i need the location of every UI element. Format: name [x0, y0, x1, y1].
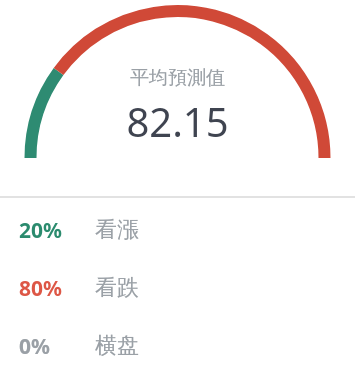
staticText: 82.15	[126, 94, 229, 148]
staticText: 横盘	[95, 332, 139, 360]
button[interactable]: 80%	[0, 272, 355, 304]
staticText: 80%	[19, 274, 62, 303]
staticText: 20%	[19, 216, 62, 245]
staticText: 0%	[19, 332, 50, 361]
button[interactable]: 20%	[0, 214, 355, 246]
staticText: 平均預測值	[130, 66, 225, 90]
button[interactable]: 0%	[0, 330, 355, 362]
staticText: 看跌	[95, 274, 139, 302]
staticText: 看漲	[95, 216, 139, 244]
